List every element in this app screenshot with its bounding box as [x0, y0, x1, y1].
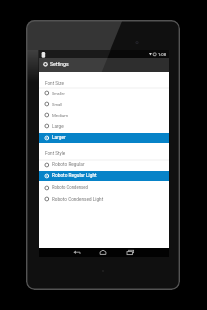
staticText: Medium: [52, 113, 68, 118]
button[interactable]: Home: [99, 248, 109, 257]
button[interactable]: Small: [39, 99, 169, 109]
button[interactable]: Back: [72, 248, 82, 257]
staticText: Font Style: [45, 151, 66, 156]
button[interactable]: Roboto Condensed: [39, 183, 169, 193]
staticText: 1:08: [158, 52, 167, 57]
staticText: Small: [52, 102, 63, 107]
button[interactable]: Medium: [39, 110, 169, 120]
button[interactable]: Smaller: [39, 88, 169, 98]
staticText: Roboto Condensed Light: [52, 196, 104, 202]
staticText: Font Size: [45, 81, 64, 86]
staticText: Roboto Condensed: [52, 185, 88, 191]
staticText: Settings: [50, 61, 69, 67]
staticText: Roboto Regular Light: [52, 173, 97, 179]
button[interactable]: Large: [39, 121, 169, 131]
button[interactable]: Roboto Regular Light: [39, 171, 169, 181]
button[interactable]: Roboto Regular: [39, 160, 169, 170]
button[interactable]: Roboto Condensed Light: [39, 194, 169, 204]
staticText: Larger: [52, 135, 66, 141]
button[interactable]: Larger: [39, 133, 169, 143]
staticText: Roboto Regular: [52, 162, 85, 168]
staticText: Smaller: [52, 91, 65, 95]
button[interactable]: Settings: [39, 58, 169, 72]
staticText: Large: [52, 124, 64, 129]
button[interactable]: Recent apps: [126, 248, 136, 257]
